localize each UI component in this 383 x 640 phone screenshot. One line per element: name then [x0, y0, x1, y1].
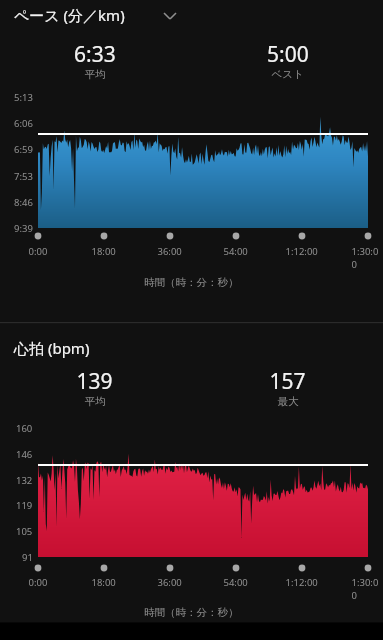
button[interactable]: 心拍グラフ — [0, 324, 383, 622]
button[interactable]: ペースグラフ — [0, 32, 383, 322]
button[interactable]: メトリックを選択するドロップダウン — [158, 4, 186, 32]
button[interactable]: ペース指標を変更 — [0, 0, 383, 32]
